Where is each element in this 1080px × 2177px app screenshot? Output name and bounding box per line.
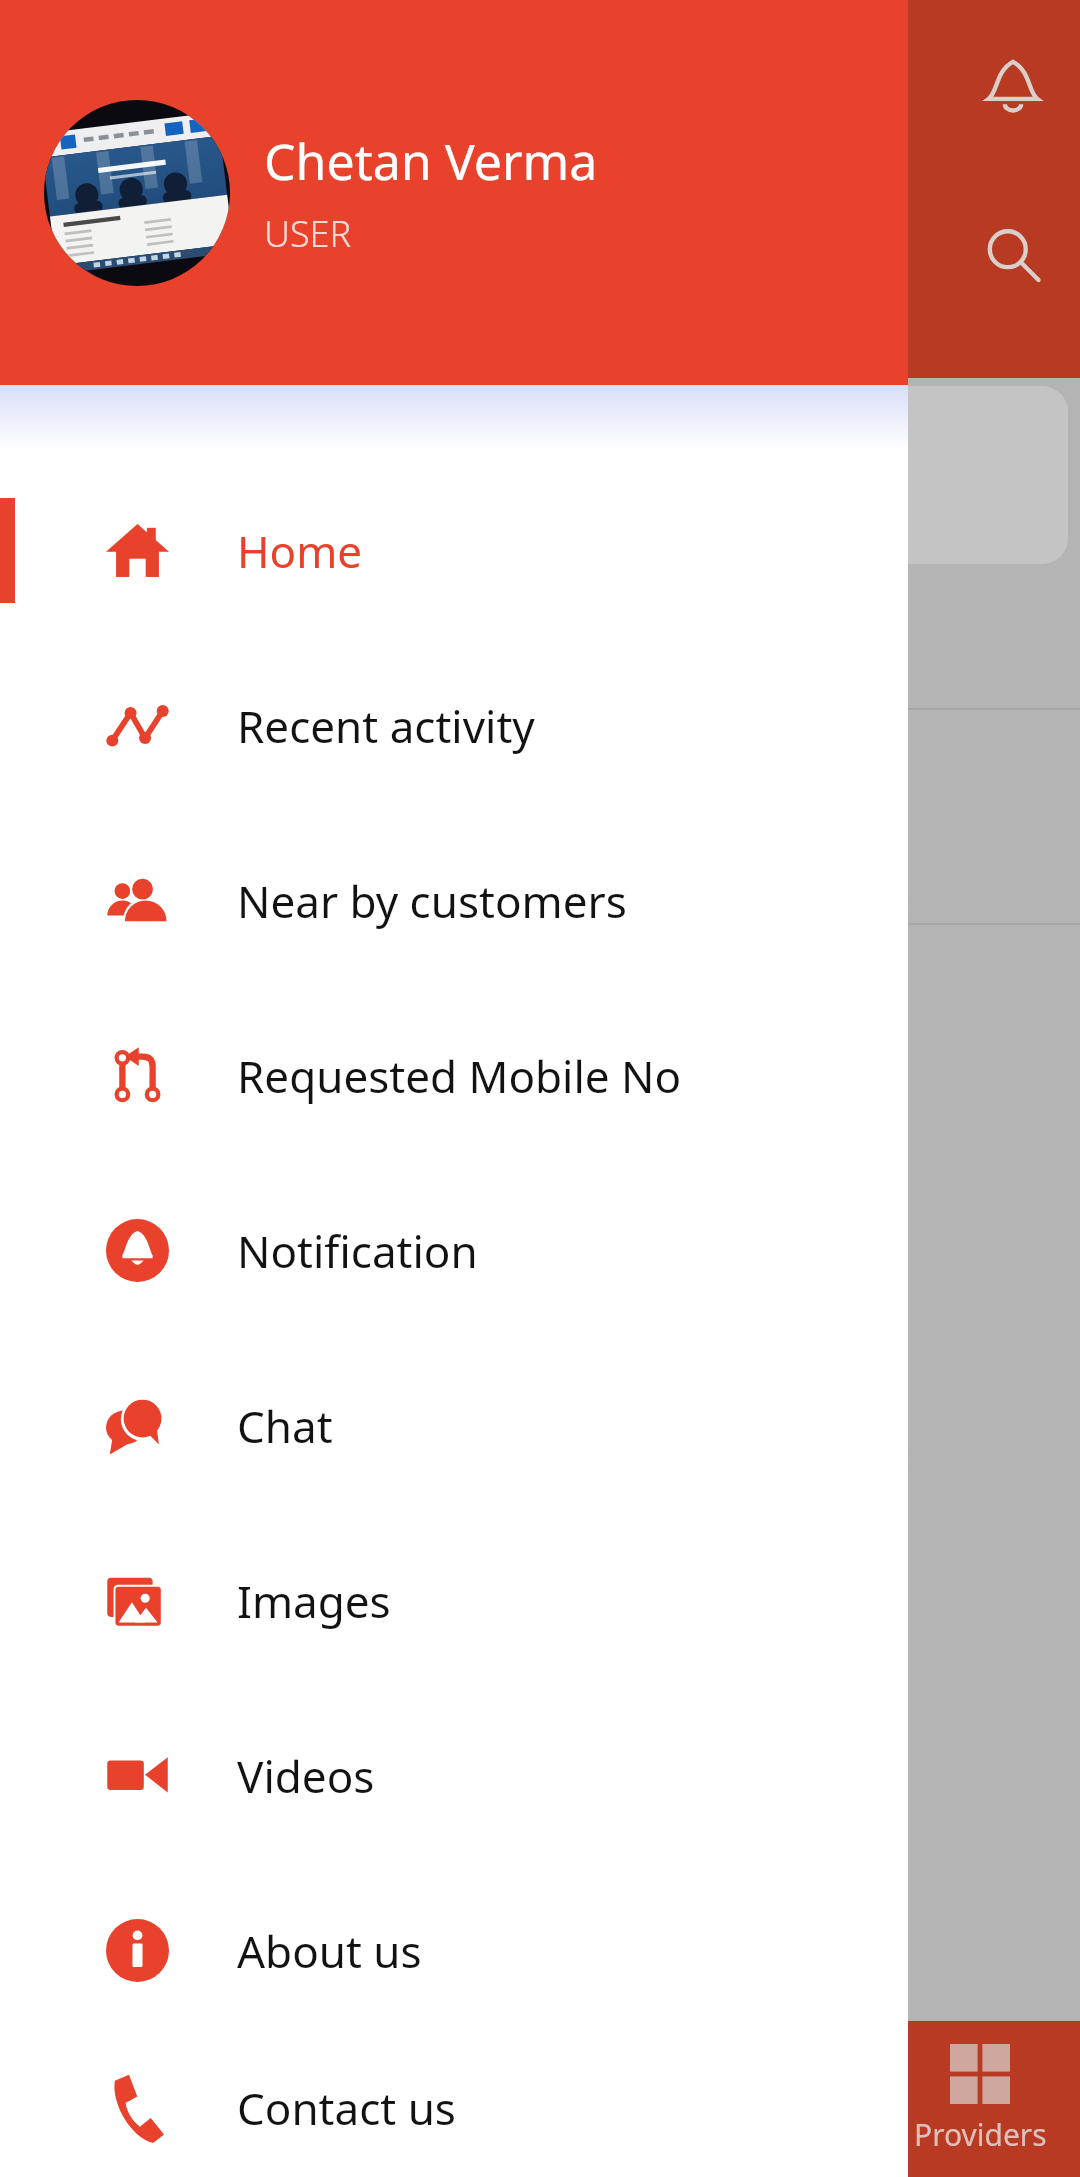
button[interactable]: Near by customers	[0, 813, 908, 988]
button[interactable]: Images	[0, 1513, 908, 1688]
button[interactable]: Notification	[0, 1163, 908, 1338]
button[interactable]: Videos	[0, 1688, 908, 1863]
button[interactable]: About us	[0, 1863, 908, 2038]
staticText: Providers	[914, 2114, 1047, 2155]
staticText: Recent activity	[237, 696, 535, 756]
button[interactable]: Chat	[0, 1338, 908, 1513]
button[interactable]: Home	[0, 463, 908, 638]
staticText: Home	[237, 521, 363, 581]
staticText: Images	[237, 1571, 391, 1631]
staticText: About us	[237, 1921, 422, 1981]
staticText: Contact us	[237, 2078, 456, 2138]
button[interactable]: Recent activity	[0, 638, 908, 813]
button[interactable]: Providers	[880, 2021, 1080, 2177]
staticText: Notification	[237, 1221, 478, 1281]
button[interactable]: Requested Mobile No	[0, 988, 908, 1163]
staticText: Chetan Verma	[264, 127, 598, 195]
staticText: USER	[264, 209, 352, 258]
staticText: Videos	[237, 1746, 375, 1806]
button[interactable]: Notifications	[958, 30, 1068, 140]
button[interactable]: Contact us	[0, 2038, 908, 2177]
button[interactable]: Search	[958, 200, 1068, 310]
staticText: Near by customers	[237, 871, 627, 931]
staticText: Chat	[237, 1396, 333, 1456]
staticText: Requested Mobile No	[237, 1046, 682, 1106]
